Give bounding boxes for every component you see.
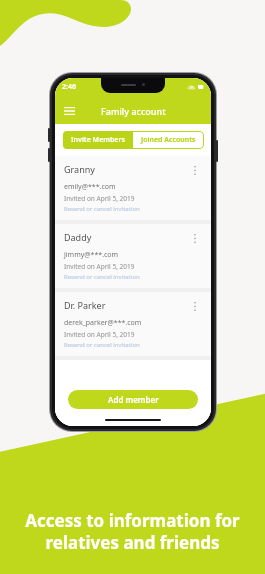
staticText: Resend or cancel invitation [64, 341, 140, 349]
staticText: Granny [64, 163, 95, 175]
staticText: derek_parker@***.com [64, 318, 142, 328]
button[interactable]: Dr. Parker [55, 292, 211, 356]
button[interactable]: Joined Accounts [133, 131, 204, 149]
staticText: Access to information for relatives and … [14, 509, 251, 554]
button[interactable]: Invite Members [63, 131, 133, 149]
button[interactable]: Add member [68, 390, 198, 409]
button[interactable]: Daddy [55, 224, 211, 288]
staticText: jimmy@***.com [64, 250, 119, 260]
staticText: Invited on April 5, 2019 [64, 262, 135, 271]
staticText: Add member [108, 394, 159, 405]
staticText: Resend or cancel invitation [64, 273, 140, 281]
button[interactable]: Granny [55, 156, 211, 220]
staticText: Invited on April 5, 2019 [64, 194, 135, 203]
staticText: Joined Accounts [141, 135, 196, 145]
staticText: Invited on April 5, 2019 [64, 330, 135, 339]
staticText: Resend or cancel invitation [64, 205, 140, 213]
staticText: Invite Members [71, 135, 125, 145]
staticText: Family account [101, 105, 166, 117]
button[interactable]: More options [188, 299, 202, 313]
staticText: 2:46 [62, 82, 76, 92]
button[interactable]: More options [188, 163, 202, 177]
staticText: Dr. Parker [64, 299, 106, 311]
button[interactable]: Open navigation menu [60, 102, 78, 120]
staticText: Daddy [64, 231, 92, 243]
staticText: emily@***.com [64, 182, 116, 192]
button[interactable]: More options [188, 231, 202, 245]
